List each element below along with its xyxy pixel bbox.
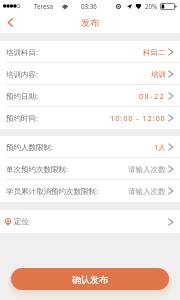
button[interactable]: Back [0, 12, 20, 33]
button[interactable]: 确认发布 [11, 268, 169, 290]
staticText: 10:00 - 12:00 [110, 113, 166, 123]
staticText: Teresa [34, 2, 53, 10]
staticText: 确认发布 [72, 274, 108, 285]
staticText: 发布 [81, 17, 99, 28]
staticText: 培训内容: [6, 69, 39, 79]
staticText: 预约时间: [6, 113, 39, 123]
button[interactable]: 预约日期: [0, 85, 180, 107]
staticText: 培训 [151, 70, 166, 79]
staticText: 单次预约次数限制: [6, 164, 69, 174]
staticText: 学员累计取消预约次数限制: [6, 186, 99, 196]
button[interactable]: 预约人数限制: [0, 136, 180, 158]
staticText: 预约人数限制: [6, 142, 54, 152]
staticText: 1人 [154, 142, 166, 152]
staticText: 定位 [14, 217, 29, 226]
staticText: 08-22 [139, 91, 166, 101]
button[interactable]: 培训科目: [0, 41, 180, 63]
button[interactable]: 单次预约次数限制: [0, 158, 180, 180]
staticText: 20% [145, 2, 158, 10]
staticText: 请输入次数 [128, 187, 166, 196]
button[interactable]: 预约时间: [0, 107, 180, 129]
staticText: 03:36 [81, 2, 97, 10]
staticText: 科目二 [143, 48, 166, 57]
staticText: 预约日期: [6, 91, 39, 101]
button[interactable]: 定位 [0, 210, 180, 233]
staticText: 培训科目: [6, 47, 39, 57]
button[interactable]: 学员累计取消预约次数限制: [0, 180, 180, 202]
button[interactable]: 培训内容: [0, 63, 180, 85]
staticText: 请输入次数 [128, 165, 166, 174]
